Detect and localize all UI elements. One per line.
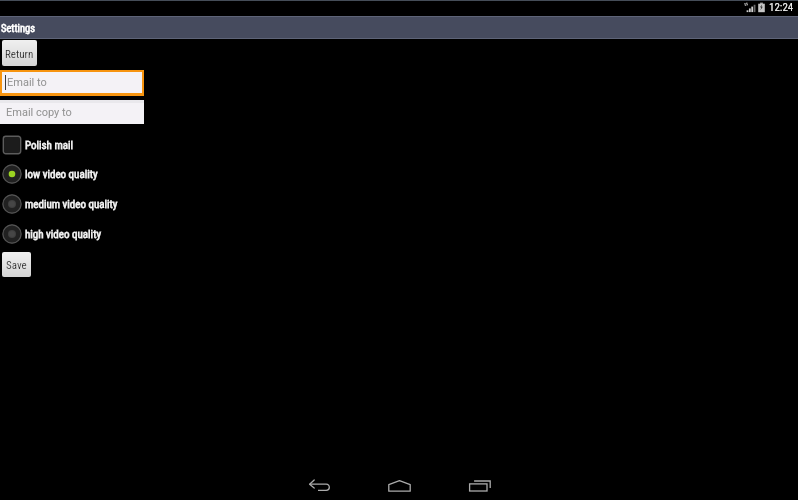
staticText: medium video quality [25, 198, 118, 211]
staticText: low video quality [25, 168, 98, 181]
button[interactable]: Home [379, 469, 420, 500]
staticText: Return [5, 48, 34, 61]
button[interactable]: Back [299, 469, 340, 500]
button[interactable]: high video quality [0, 224, 798, 244]
staticText: 12:24 [769, 1, 794, 14]
button[interactable]: low video quality [0, 164, 798, 184]
button[interactable]: Recent apps [459, 469, 500, 500]
button[interactable]: Save [2, 252, 31, 277]
button[interactable]: Email copy to [0, 103, 144, 124]
staticText: Settings [1, 22, 36, 34]
button[interactable]: Return [2, 40, 37, 66]
button[interactable]: Polish mail [0, 135, 798, 155]
button[interactable]: Email to [2, 72, 142, 93]
staticText: Polish mail [25, 139, 74, 152]
staticText: Save [6, 259, 27, 272]
staticText: high video quality [25, 228, 101, 241]
button[interactable]: medium video quality [0, 194, 798, 214]
staticText: Email to [7, 76, 47, 89]
staticText: Email copy to [6, 106, 72, 119]
